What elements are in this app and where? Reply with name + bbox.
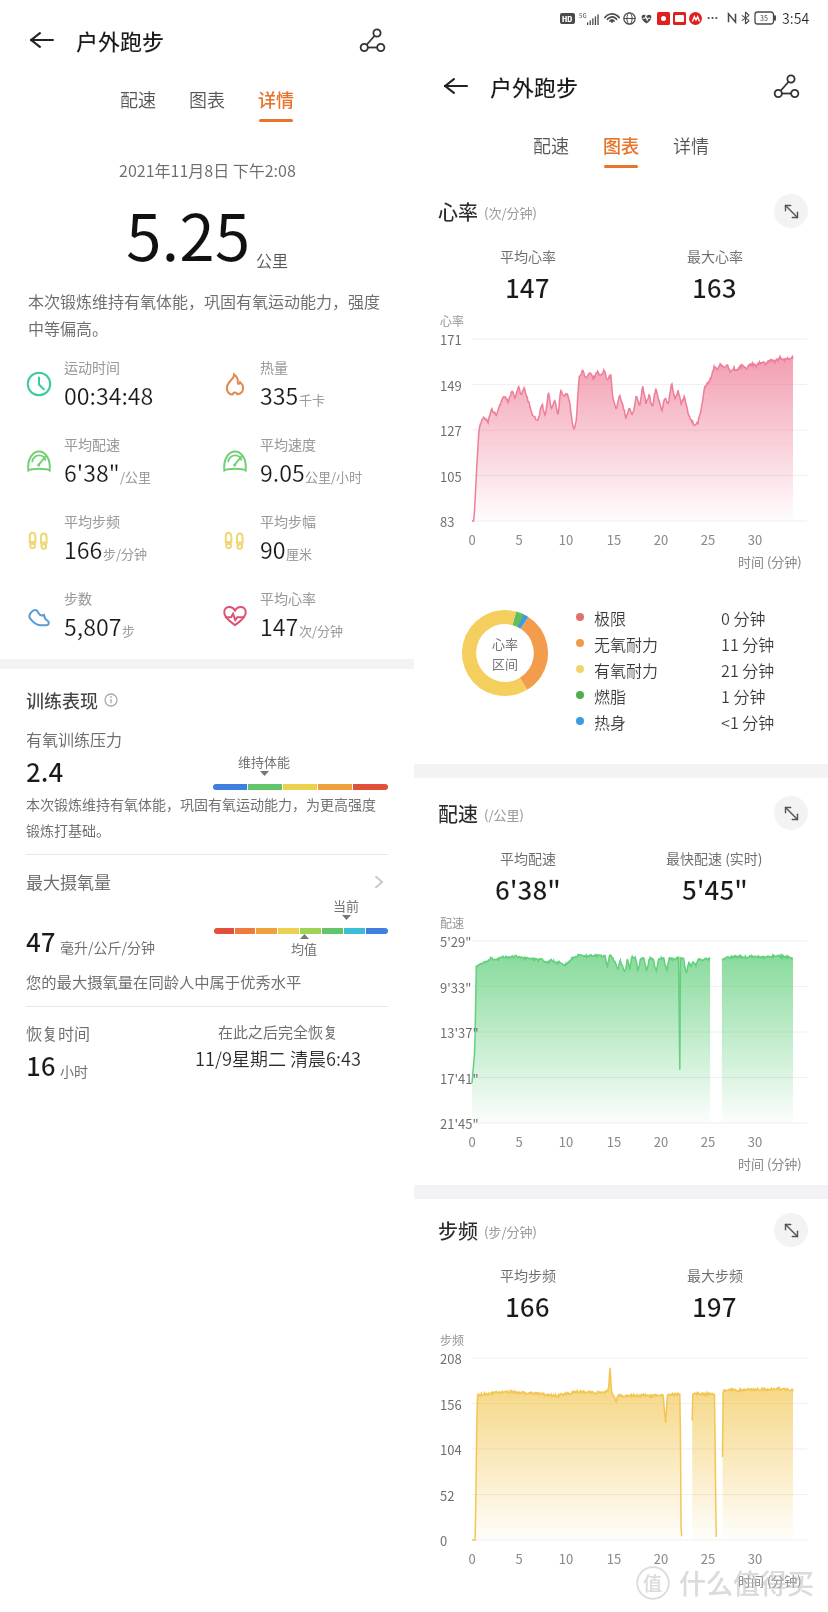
staticText: 平均步频: [64, 511, 120, 531]
staticText: 训练表现: [26, 687, 98, 713]
staticText: 燃脂: [594, 684, 627, 707]
staticText: 20: [650, 1132, 672, 1151]
button[interactable]: Share: [766, 66, 806, 106]
staticText: 平均步频: [500, 1265, 556, 1285]
staticText: 心率: [492, 634, 519, 653]
staticText: 166: [505, 1287, 550, 1325]
staticText: 52: [440, 1486, 455, 1505]
staticText: 本次锻炼维持有氧体能，巩固有氧运动能力，强度中等偏高。: [28, 289, 388, 339]
staticText: 最大摄氧量: [26, 869, 111, 894]
staticText: 147: [505, 268, 550, 306]
staticText: 公里: [256, 248, 289, 271]
staticText: 平均配速: [500, 848, 556, 868]
staticText: 9.05: [260, 455, 305, 488]
staticText: 2.4: [26, 752, 64, 790]
staticText: 5: [508, 530, 530, 549]
staticText: 11/9星期二 清晨6:43: [195, 1045, 362, 1071]
staticText: 最快配速 (实时): [666, 848, 763, 868]
staticText: 均值: [291, 939, 318, 958]
staticText: 10: [555, 1549, 577, 1568]
staticText: 156: [440, 1395, 462, 1414]
staticText: 无氧耐力: [594, 632, 659, 655]
staticText: 热身: [594, 710, 627, 733]
staticText: 厘米: [286, 544, 313, 563]
staticText: 15: [603, 1132, 625, 1151]
staticText: 00:34:48: [64, 378, 154, 411]
staticText: 毫升/公斤/分钟: [60, 937, 155, 957]
staticText: (次/分钟): [484, 203, 537, 222]
staticText: 21 分钟: [721, 658, 775, 681]
staticText: 本次锻炼维持有氧体能，巩固有氧运动能力，为更高强度锻炼打基础。: [26, 794, 388, 840]
staticText: 步/分钟: [103, 544, 148, 563]
staticText: 运动时间: [64, 357, 120, 377]
staticText: 最大步频: [687, 1265, 743, 1285]
staticText: 极限: [594, 606, 627, 629]
staticText: 20: [650, 1549, 672, 1568]
staticText: 公里/小时: [305, 467, 363, 486]
button[interactable]: 图表: [597, 130, 645, 170]
staticText: (/公里): [484, 805, 524, 824]
staticText: 什么值得买: [679, 1563, 814, 1602]
staticText: 0 分钟: [721, 606, 766, 629]
staticText: 您的最大摄氧量在同龄人中属于优秀水平: [26, 970, 302, 992]
button[interactable]: Share: [352, 20, 392, 60]
button[interactable]: 详情: [667, 130, 715, 170]
button[interactable]: 最大摄氧量: [26, 869, 388, 894]
staticText: 147: [260, 609, 299, 642]
button[interactable]: 详情: [252, 84, 300, 124]
staticText: <1 分钟: [721, 710, 775, 733]
staticText: 心率: [438, 197, 478, 226]
staticText: 15: [603, 530, 625, 549]
staticText: 配速: [438, 799, 478, 828]
staticText: 时间 (分钟): [738, 552, 802, 571]
staticText: 166: [64, 532, 103, 565]
staticText: 千卡: [299, 390, 326, 409]
button[interactable]: Expand: [774, 796, 808, 830]
staticText: 恢复时间: [26, 1021, 91, 1044]
staticText: 图表: [603, 132, 639, 158]
button[interactable]: 图表: [183, 84, 231, 124]
button[interactable]: 配速: [527, 130, 575, 170]
button[interactable]: Expand: [774, 194, 808, 228]
staticText: 平均步幅: [260, 511, 316, 531]
button[interactable]: Back: [436, 66, 476, 106]
staticText: 5,807: [64, 609, 122, 642]
staticText: 16: [26, 1046, 56, 1084]
staticText: 1 分钟: [721, 684, 766, 707]
staticText: 平均心率: [500, 246, 556, 266]
staticText: 5'45": [682, 870, 748, 908]
staticText: 17'41": [440, 1069, 479, 1088]
staticText: 0: [461, 1549, 483, 1568]
staticText: 5.25: [126, 187, 251, 280]
staticText: 配速: [440, 914, 465, 931]
staticText: 户外跑步: [76, 24, 165, 56]
button[interactable]: 配速: [114, 84, 162, 124]
staticText: 3:54: [782, 8, 810, 28]
staticText: 有氧耐力: [594, 658, 659, 681]
staticText: 维持体能: [238, 752, 291, 771]
staticText: 平均配速: [64, 434, 120, 454]
staticText: 47: [26, 922, 56, 960]
staticText: (步/分钟): [484, 1222, 537, 1241]
staticText: 平均心率: [260, 588, 316, 608]
staticText: 25: [697, 1132, 719, 1151]
staticText: 10: [555, 1132, 577, 1151]
staticText: 30: [744, 1132, 766, 1151]
staticText: 时间 (分钟): [738, 1571, 802, 1590]
staticText: 149: [440, 376, 462, 395]
staticText: 171: [440, 330, 462, 349]
staticText: 25: [697, 530, 719, 549]
staticText: 9'33": [440, 978, 472, 997]
button[interactable]: Expand: [774, 1213, 808, 1247]
staticText: 13'37": [440, 1023, 479, 1042]
staticText: 5'29": [440, 932, 472, 951]
staticText: 有氧训练压力: [26, 727, 123, 750]
staticText: 2021年11月8日 下午2:08: [119, 158, 296, 181]
staticText: 心率: [440, 312, 465, 329]
staticText: 104: [440, 1440, 462, 1459]
button[interactable]: Back: [22, 20, 62, 60]
staticText: 小时: [60, 1061, 88, 1081]
staticText: 详情: [258, 86, 294, 112]
staticText: 时间 (分钟): [738, 1154, 802, 1173]
staticText: 30: [744, 1549, 766, 1568]
